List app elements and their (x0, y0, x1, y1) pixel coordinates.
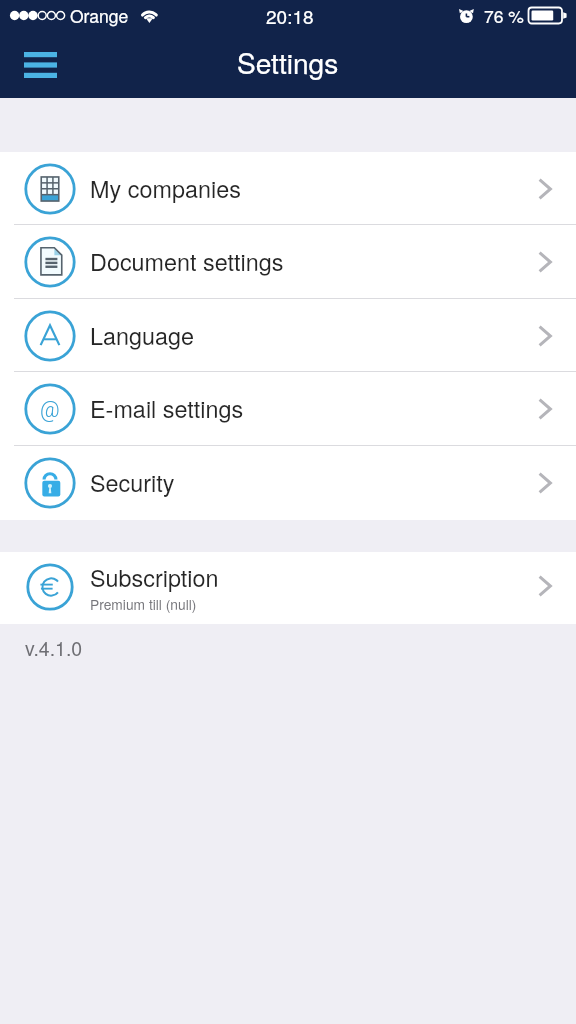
button[interactable]: Open navigation menu (12, 37, 68, 93)
button[interactable]: Language (0, 299, 576, 372)
button[interactable]: My companies (0, 152, 576, 225)
staticText: Security (90, 465, 175, 499)
button[interactable]: Subscription (0, 552, 576, 624)
staticText: Subscription (90, 560, 219, 594)
button[interactable]: Security (0, 446, 576, 520)
button[interactable]: @ (0, 372, 576, 446)
staticText: @ (40, 397, 60, 422)
staticText: Settings (237, 42, 339, 82)
staticText: v.4.1.0 (25, 634, 83, 662)
staticText: Premium till (null) (90, 594, 197, 614)
staticText: 20:18 (266, 2, 314, 29)
staticText: Orange (70, 3, 129, 28)
staticText: Language (90, 318, 195, 352)
staticText: E-mail settings (90, 391, 244, 425)
staticText: 76 % (484, 3, 524, 28)
button[interactable]: Document settings (0, 225, 576, 299)
staticText: My companies (90, 171, 241, 205)
staticText: Document settings (90, 244, 284, 278)
